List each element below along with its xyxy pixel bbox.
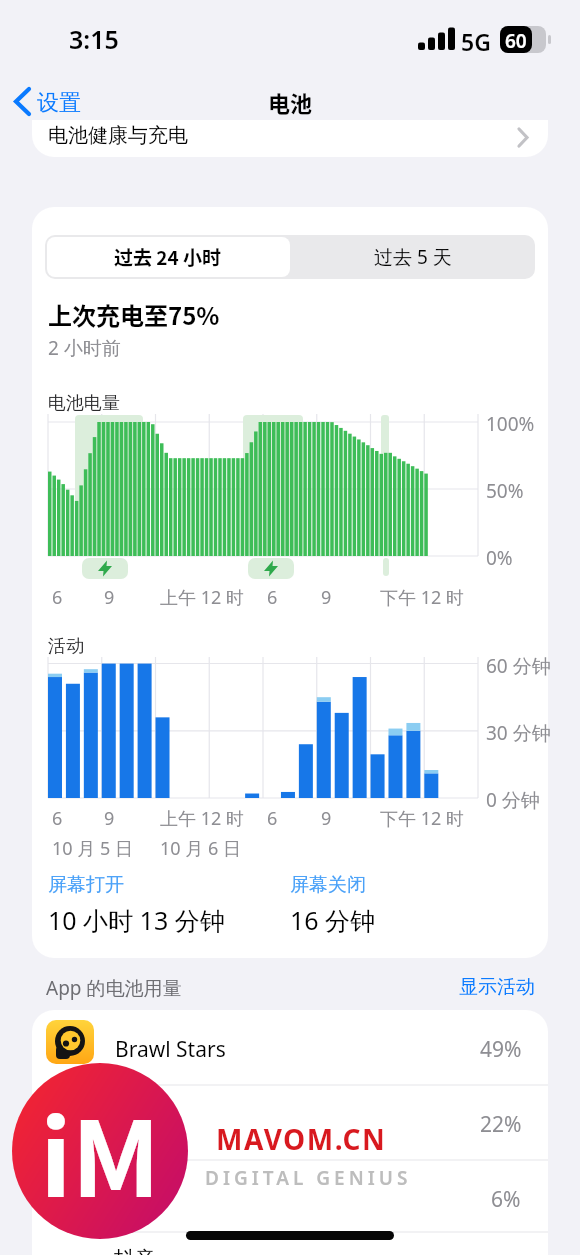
- staticText: 设置: [37, 89, 81, 117]
- staticText: 9: [321, 806, 332, 831]
- staticText: 49%: [480, 1035, 522, 1064]
- button[interactable]: [32, 1160, 548, 1232]
- button[interactable]: 过去 5 天: [290, 235, 535, 279]
- staticText: 22%: [480, 1110, 522, 1139]
- staticText: 6: [267, 585, 278, 610]
- staticText: 电池健康与充电: [48, 123, 188, 148]
- staticText: DIGITAL GENIUS: [205, 1165, 412, 1191]
- staticText: 10 月 5 日: [52, 836, 133, 861]
- staticText: 100%: [486, 411, 535, 437]
- staticText: 16 分钟: [290, 903, 376, 937]
- staticText: 0 分钟: [486, 787, 540, 813]
- staticText: 上午 12 时: [160, 585, 244, 610]
- staticText: 0%: [486, 545, 513, 571]
- staticText: 抖音: [114, 1246, 156, 1255]
- button[interactable]: 显示活动: [455, 971, 540, 1001]
- staticText: App 的电池用量: [46, 975, 182, 1001]
- staticText: 10 小时 13 分钟: [48, 903, 225, 937]
- staticText: 6%: [491, 1185, 521, 1214]
- staticText: 6: [52, 806, 63, 831]
- staticText: 60: [505, 28, 527, 54]
- button[interactable]: 过去 24 小时: [45, 235, 290, 279]
- staticText: 50%: [486, 478, 524, 504]
- staticText: 活动: [48, 635, 84, 658]
- staticText: 6: [267, 806, 278, 831]
- staticText: 9: [104, 585, 115, 610]
- staticText: 9: [321, 585, 332, 610]
- staticText: 3:15: [69, 22, 119, 56]
- button[interactable]: [32, 1232, 548, 1255]
- staticText: 下午 12 时: [380, 806, 464, 831]
- staticText: 过去 24 小时: [114, 243, 222, 271]
- staticText: 屏幕打开: [48, 873, 124, 897]
- staticText: 上次充电至75%: [48, 297, 220, 332]
- button[interactable]: 电池健康与充电: [32, 120, 548, 157]
- staticText: 5G: [461, 26, 491, 57]
- staticText: 上午 12 时: [160, 806, 244, 831]
- staticText: 电池: [0, 86, 580, 118]
- staticText: 屏幕关闭: [290, 873, 366, 897]
- staticText: 9: [104, 806, 115, 831]
- staticText: 下午 12 时: [380, 585, 464, 610]
- staticText: Brawl Stars: [115, 1035, 226, 1064]
- staticText: 显示活动: [459, 975, 535, 999]
- button[interactable]: [32, 1085, 548, 1160]
- staticText: 2 小时前: [48, 335, 121, 361]
- staticText: 10 月 6 日: [160, 836, 241, 861]
- button[interactable]: [0, 88, 90, 120]
- staticText: 6: [52, 585, 63, 610]
- staticText: 60 分钟: [486, 653, 551, 679]
- staticText: 电池电量: [48, 392, 120, 415]
- button[interactable]: [32, 1010, 548, 1085]
- staticText: 过去 5 天: [374, 244, 452, 270]
- staticText: 30 分钟: [486, 720, 551, 746]
- staticText: iM: [40, 1076, 161, 1227]
- staticText: MAVOM.CN: [216, 1120, 387, 1158]
